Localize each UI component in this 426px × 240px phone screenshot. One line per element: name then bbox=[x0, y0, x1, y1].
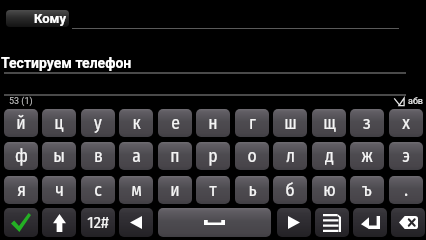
staticText: н bbox=[208, 113, 218, 134]
staticText: м bbox=[131, 180, 142, 201]
button[interactable]: Send bbox=[4, 208, 38, 237]
staticText: щ bbox=[323, 113, 336, 134]
staticText: з bbox=[363, 113, 371, 134]
staticText: ы bbox=[53, 146, 65, 167]
staticText: т bbox=[209, 180, 217, 201]
button[interactable]: л bbox=[273, 142, 307, 170]
staticText: ь bbox=[248, 180, 257, 201]
staticText: ъ bbox=[362, 180, 372, 201]
button[interactable]: н bbox=[196, 109, 230, 137]
button[interactable]: 12# bbox=[81, 208, 115, 237]
staticText: ч bbox=[55, 180, 64, 201]
button[interactable]: р bbox=[196, 142, 230, 170]
staticText: ю bbox=[323, 180, 336, 201]
staticText: к bbox=[132, 113, 141, 134]
staticText: у bbox=[94, 113, 102, 134]
button[interactable]: х bbox=[389, 109, 423, 137]
button[interactable]: и bbox=[158, 176, 192, 204]
button[interactable]: в bbox=[81, 142, 115, 170]
staticText: ц bbox=[54, 113, 64, 134]
button[interactable]: ю bbox=[312, 176, 346, 204]
button[interactable]: Menu bbox=[315, 208, 349, 237]
button[interactable]: Backspace bbox=[391, 208, 425, 237]
button[interactable]: г bbox=[235, 109, 269, 137]
staticText: о bbox=[247, 146, 257, 167]
button[interactable]: с bbox=[81, 176, 115, 204]
staticText: 12# bbox=[87, 213, 109, 233]
staticText: и bbox=[170, 180, 180, 201]
button[interactable]: о bbox=[235, 142, 269, 170]
button[interactable]: ь bbox=[235, 176, 269, 204]
staticText: г bbox=[249, 113, 256, 134]
staticText: . bbox=[404, 180, 408, 201]
button[interactable]: я bbox=[4, 176, 38, 204]
button[interactable]: п bbox=[158, 142, 192, 170]
button[interactable]: м bbox=[119, 176, 153, 204]
button[interactable]: д bbox=[312, 142, 346, 170]
button[interactable]: ф bbox=[4, 142, 38, 170]
staticText: а bbox=[132, 146, 141, 167]
staticText: абв bbox=[408, 96, 424, 107]
button[interactable]: й bbox=[4, 109, 38, 137]
staticText: ш bbox=[284, 113, 297, 134]
staticText: 53 (1) bbox=[9, 96, 33, 107]
button[interactable]: Space bbox=[158, 208, 271, 237]
staticText: ф bbox=[15, 146, 28, 167]
button[interactable]: Shift bbox=[42, 208, 76, 237]
staticText: й bbox=[16, 113, 26, 134]
staticText: Тестируем телефон bbox=[1, 55, 132, 71]
button[interactable]: ш bbox=[273, 109, 307, 137]
staticText: в bbox=[94, 146, 103, 167]
button[interactable]: т bbox=[196, 176, 230, 204]
button[interactable]: Right bbox=[277, 208, 311, 237]
button[interactable]: щ bbox=[312, 109, 346, 137]
button[interactable]: ч bbox=[42, 176, 76, 204]
button[interactable]: э bbox=[389, 142, 423, 170]
button[interactable]: ъ bbox=[350, 176, 384, 204]
staticText: б bbox=[285, 180, 295, 201]
staticText: с bbox=[94, 180, 102, 201]
button[interactable]: Left bbox=[119, 208, 153, 237]
staticText: я bbox=[17, 180, 26, 201]
button[interactable]: ц bbox=[42, 109, 76, 137]
staticText: Кому bbox=[34, 11, 66, 26]
staticText: л bbox=[286, 146, 295, 167]
staticText: е bbox=[171, 113, 180, 134]
button[interactable]: е bbox=[158, 109, 192, 137]
button[interactable]: . bbox=[389, 176, 423, 204]
button[interactable]: у bbox=[81, 109, 115, 137]
button[interactable]: з bbox=[350, 109, 384, 137]
button[interactable]: к bbox=[119, 109, 153, 137]
button[interactable]: б bbox=[273, 176, 307, 204]
button[interactable]: ж bbox=[350, 142, 384, 170]
staticText: д bbox=[325, 146, 334, 167]
staticText: ж bbox=[361, 146, 373, 167]
staticText: х bbox=[402, 113, 410, 134]
staticText: п bbox=[170, 146, 180, 167]
button[interactable]: а bbox=[119, 142, 153, 170]
button[interactable]: ы bbox=[42, 142, 76, 170]
staticText: э bbox=[402, 146, 410, 167]
button[interactable]: Enter bbox=[353, 208, 387, 237]
button[interactable]: Кому bbox=[6, 10, 69, 27]
staticText: р bbox=[208, 146, 218, 167]
